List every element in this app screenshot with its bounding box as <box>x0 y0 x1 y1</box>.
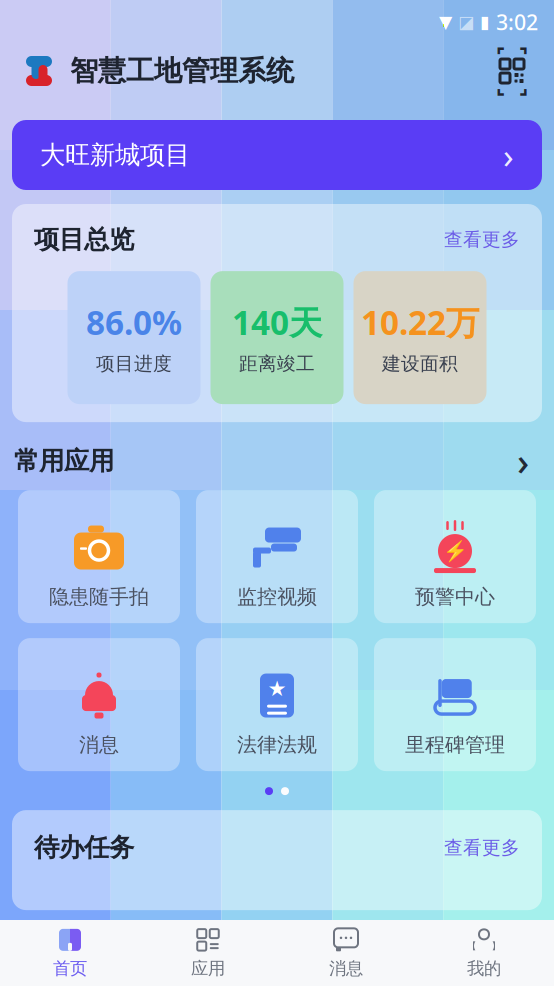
staticText: 大旺新城项目 <box>40 139 190 170</box>
staticText: 86.0% <box>86 300 182 344</box>
button[interactable]: 扫一扫 <box>492 51 532 91</box>
button[interactable]: 首页 <box>1 922 139 984</box>
staticText: 项目总览 <box>34 224 134 255</box>
staticText: 隐患随手拍 <box>49 585 149 609</box>
staticText: 应用 <box>191 958 225 979</box>
button[interactable]: ★ <box>196 638 358 771</box>
staticText: › <box>517 436 529 486</box>
staticText: ⌝ <box>519 44 528 67</box>
button[interactable]: 查看更多 <box>444 836 520 859</box>
staticText: 查看更多 <box>444 228 520 251</box>
staticText: 消息 <box>329 958 363 979</box>
staticText: 里程碑管理 <box>405 733 505 757</box>
button[interactable]: 消息 <box>18 638 180 771</box>
staticText: ⚡ <box>442 540 467 562</box>
staticText: 我的 <box>467 958 501 979</box>
staticText: 3:02 <box>496 8 538 36</box>
button[interactable]: 我的 <box>415 922 553 984</box>
staticText: ★ <box>267 676 286 701</box>
button[interactable]: 消息 <box>277 922 415 984</box>
staticText: 智慧工地管理系统 <box>70 54 294 88</box>
staticText: 监控视频 <box>237 585 317 609</box>
staticText: 建设面积 <box>382 352 458 375</box>
staticText: ⌞ <box>496 75 505 98</box>
staticText: 项目进度 <box>96 352 172 375</box>
staticText: 查看更多 <box>444 836 520 859</box>
button[interactable]: 监控视频 <box>196 490 358 623</box>
button[interactable]: 隐患随手拍 <box>18 490 180 623</box>
staticText: 预警中心 <box>415 585 495 609</box>
button[interactable]: 里程碑管理 <box>374 638 536 771</box>
staticText: 距离竣工 <box>239 352 315 375</box>
staticText: 140天 <box>232 300 322 344</box>
button[interactable]: ⚡ <box>374 490 536 623</box>
staticText: ◪ <box>458 12 474 32</box>
button[interactable]: 大旺新城项目 <box>12 120 542 190</box>
staticText: 消息 <box>79 733 119 757</box>
staticText: 首页 <box>53 958 87 979</box>
button[interactable]: 查看更多 <box>444 228 520 251</box>
staticText: ▼ <box>439 12 452 32</box>
staticText: 待办任务 <box>34 832 134 863</box>
staticText: ▮ <box>480 12 490 32</box>
staticText: ⌟ <box>519 75 528 98</box>
button[interactable]: 应用 <box>139 922 277 984</box>
staticText: ⌜ <box>496 44 505 67</box>
staticText: › <box>503 132 514 178</box>
staticText: 法律法规 <box>237 733 317 757</box>
staticText: 10.22万 <box>361 300 479 344</box>
staticText: 常用应用 <box>14 446 114 477</box>
button[interactable]: 更多应用 <box>506 444 540 478</box>
